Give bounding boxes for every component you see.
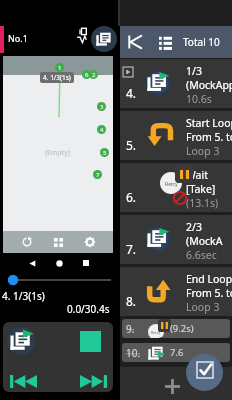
- staticText: Total 10: [183, 35, 220, 49]
- button[interactable]: Apps: [50, 234, 66, 250]
- staticText: 5: [103, 149, 107, 157]
- button[interactable]: Next: [77, 365, 109, 392]
- button[interactable]: 10.: [122, 343, 230, 362]
- staticText: 2: [92, 71, 96, 79]
- staticText: 4: [100, 126, 104, 134]
- button[interactable]: 4.: [120, 59, 232, 108]
- button[interactable]: Home: [51, 255, 67, 271]
- button[interactable]: Play record: [6, 326, 36, 356]
- staticText: (Empty): [45, 148, 71, 158]
- staticText: 1: [58, 64, 62, 72]
- staticText: 7: [96, 171, 100, 179]
- staticText: Loop 3: [186, 144, 220, 158]
- button[interactable]: Previous: [7, 365, 39, 392]
- button[interactable]: 9.: [122, 319, 230, 338]
- staticText: Loop 3: [186, 300, 220, 314]
- staticText: 8.: [126, 293, 137, 309]
- button[interactable]: 5.: [120, 111, 232, 160]
- staticText: Wait: [186, 168, 208, 182]
- staticText: 5.: [126, 137, 137, 153]
- staticText: 7.6: [170, 346, 184, 359]
- staticText: 1/3: [186, 64, 202, 78]
- staticText: [Take]: [186, 182, 216, 196]
- staticText: From 5. to: [186, 130, 232, 144]
- button[interactable]: 6.: [120, 163, 232, 212]
- staticText: Retry: [165, 180, 178, 187]
- staticText: From 5. to: [186, 286, 232, 300]
- staticText: 9.: [126, 322, 135, 336]
- staticText: 6.: [126, 189, 137, 205]
- staticText: Retry: [151, 330, 161, 335]
- staticText: 4.: [126, 85, 137, 101]
- button[interactable]: 7.: [120, 215, 232, 264]
- staticText: 6: [85, 71, 89, 79]
- button[interactable]: List view: [150, 27, 180, 57]
- staticText: Start Loop: [186, 116, 232, 130]
- staticText: No.1: [8, 32, 28, 44]
- staticText: End Loop: [186, 272, 232, 286]
- staticText: 7.: [126, 241, 137, 257]
- staticText: 4. 1/3(1s): [2, 289, 45, 303]
- staticText: 10.: [126, 346, 141, 360]
- button[interactable]: Collapse: [120, 27, 150, 57]
- button[interactable]: Refresh: [19, 234, 35, 250]
- staticText: 10.6s: [186, 92, 212, 106]
- staticText: (13.1s): [186, 196, 219, 210]
- button[interactable]: Settings: [82, 234, 98, 250]
- staticText: 3: [100, 103, 104, 111]
- staticText: (MockA: [186, 234, 223, 248]
- button[interactable]: Record list: [91, 26, 117, 52]
- staticText: (9.2s): [170, 322, 194, 335]
- staticText: 4. 1/3(1s): [43, 73, 71, 82]
- button[interactable]: 8.: [120, 267, 232, 316]
- staticText: 0.0/30.4s: [67, 302, 110, 316]
- button[interactable]: Confirm selection: [186, 354, 223, 391]
- button[interactable]: Back: [24, 255, 40, 271]
- staticText: 6.6sec: [186, 248, 217, 262]
- button[interactable]: Add step: [120, 367, 232, 400]
- staticText: (MockApp: [186, 78, 232, 92]
- staticText: 2/3: [186, 220, 202, 234]
- button[interactable]: Recents: [78, 255, 94, 271]
